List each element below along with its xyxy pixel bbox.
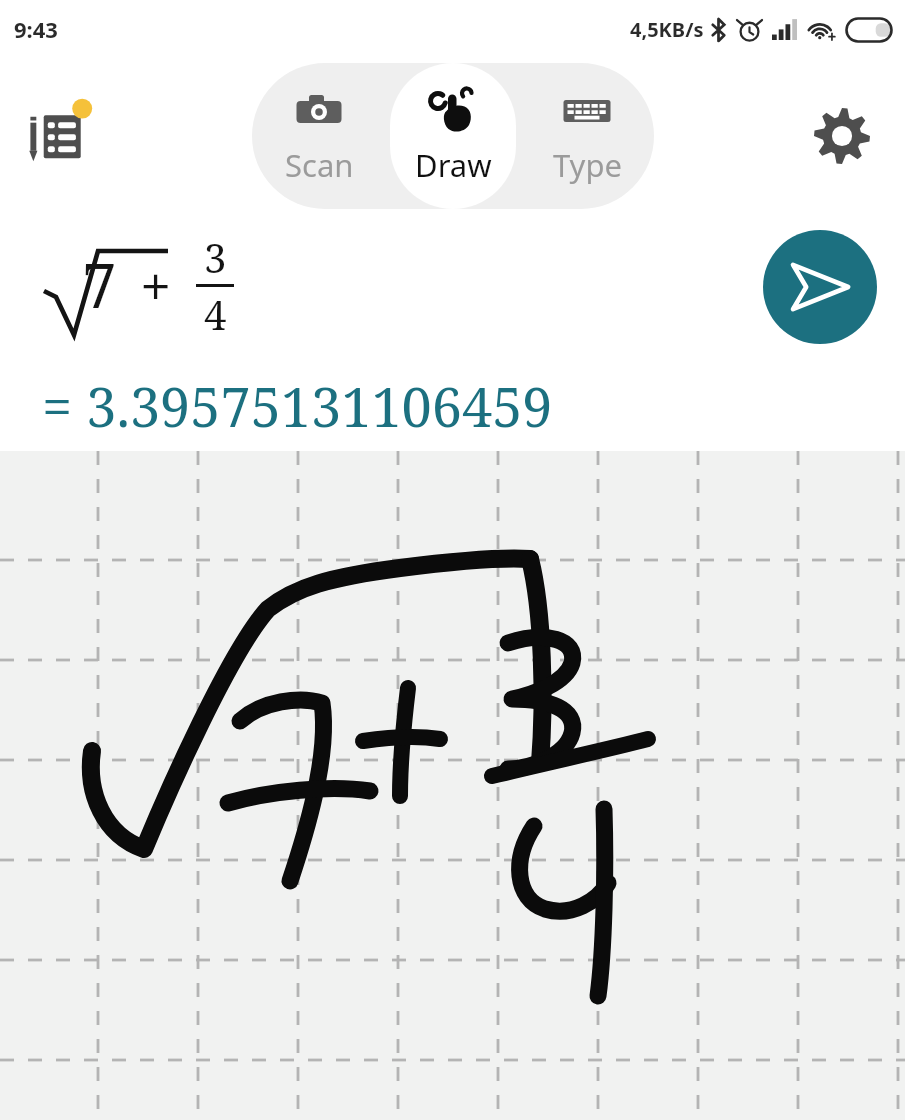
staticText: Draw bbox=[415, 144, 492, 186]
button[interactable]: Draw bbox=[386, 63, 520, 209]
staticText: Scan bbox=[285, 144, 354, 186]
button[interactable]: Settings bbox=[797, 91, 887, 181]
staticText: 7 bbox=[82, 242, 117, 326]
button[interactable]: Scan bbox=[252, 63, 386, 209]
button[interactable] bbox=[0, 451, 905, 1120]
staticText: Type bbox=[553, 144, 622, 186]
staticText: 3 bbox=[204, 230, 227, 284]
staticText: 4,5KB/s bbox=[630, 16, 704, 43]
button[interactable]: History bbox=[12, 88, 108, 184]
button[interactable]: Send bbox=[763, 230, 877, 344]
staticText: 4 bbox=[204, 287, 227, 341]
staticText: = 3.39575131106459 bbox=[42, 369, 553, 443]
button[interactable]: Type bbox=[520, 63, 654, 209]
staticText: 9:43 bbox=[14, 14, 58, 44]
staticText: + bbox=[140, 247, 172, 323]
